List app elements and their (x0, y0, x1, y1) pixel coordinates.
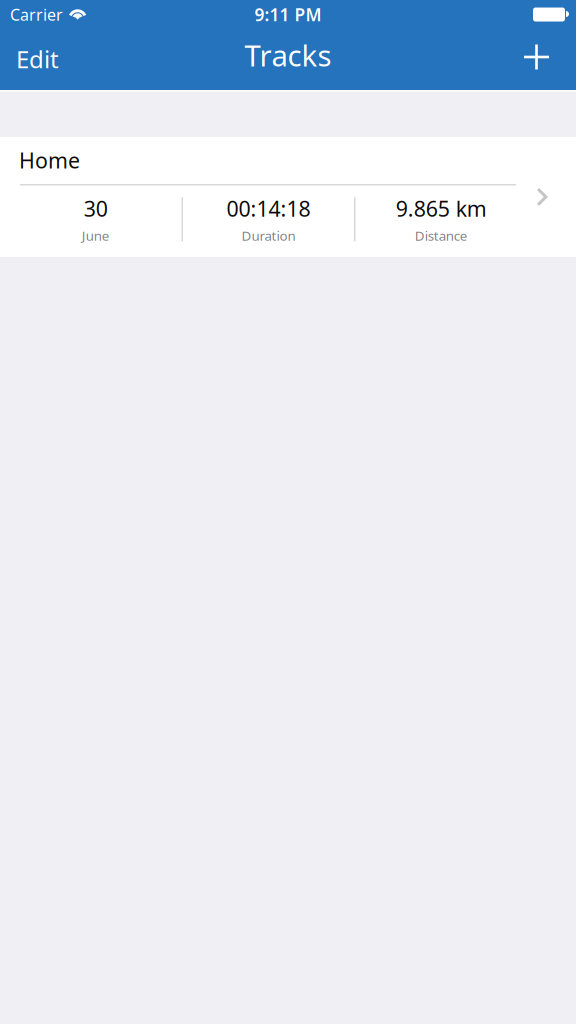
button[interactable]: Edit (0, 28, 79, 89)
staticText: Home (19, 146, 80, 174)
staticText: Tracks (244, 35, 331, 74)
button[interactable]: Home (0, 137, 576, 257)
staticText: Distance (415, 227, 468, 244)
button[interactable]: Add track (503, 28, 576, 89)
staticText: 9.865 km (396, 194, 487, 223)
staticText: Carrier (10, 4, 63, 25)
staticText: Edit (16, 43, 59, 75)
staticText: Duration (241, 227, 295, 244)
staticText: 00:14:18 (226, 194, 310, 223)
staticText: 30 (84, 194, 108, 223)
staticText: 9:11 PM (254, 3, 321, 26)
staticText: June (82, 227, 110, 244)
